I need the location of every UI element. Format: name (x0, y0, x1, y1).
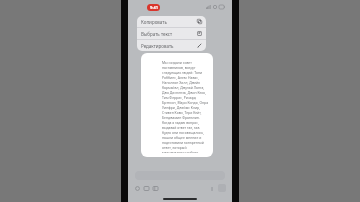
button[interactable]: Мы создали совет наставников, вокруг сле… (141, 53, 213, 157)
button[interactable]: Копировать (137, 16, 206, 27)
staticText: Мы создали совет наставников, вокруг сле… (162, 60, 209, 153)
button[interactable]: Редактировать (137, 40, 206, 51)
button[interactable]: Camera (152, 185, 159, 192)
staticText: Копировать (141, 19, 197, 25)
button[interactable]: Voice (208, 185, 215, 192)
button[interactable]: Recording (147, 4, 160, 11)
button[interactable]: Выбрать текст (137, 28, 206, 39)
staticText: Выбрать текст (141, 31, 197, 37)
button[interactable]: Attach (134, 185, 141, 192)
staticText: 9:41 (150, 5, 158, 10)
button[interactable]: Gallery (143, 185, 150, 192)
staticText: Редактировать (141, 43, 197, 49)
